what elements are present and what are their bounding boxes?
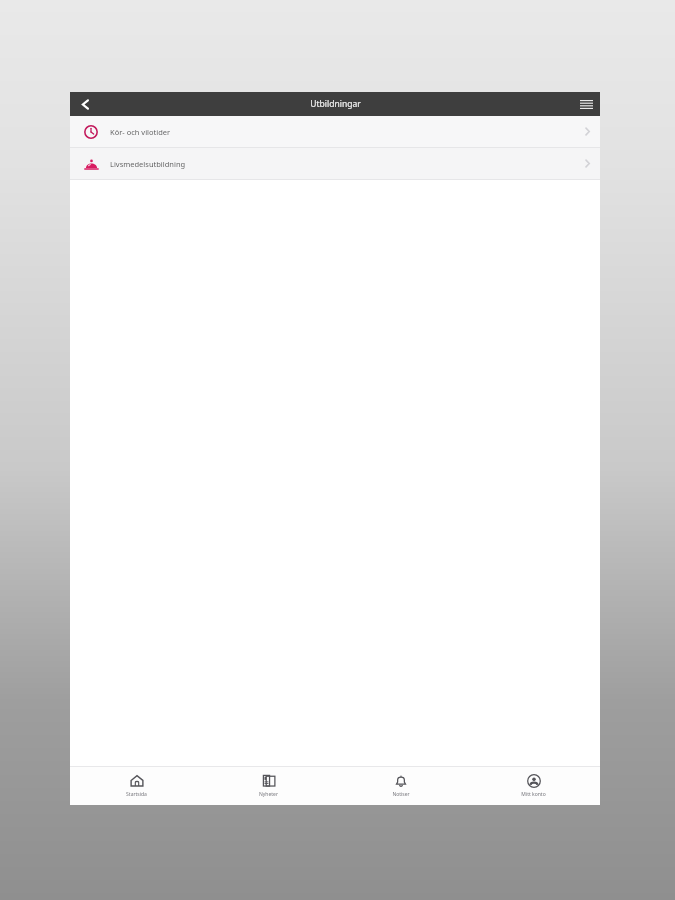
button[interactable]: Mitt konto — [467, 767, 600, 805]
staticText: Mitt konto — [521, 791, 546, 798]
staticText: Startsida — [126, 791, 147, 798]
staticText: Notiser — [392, 791, 410, 798]
button[interactable]: Back — [70, 92, 100, 116]
staticText: Livsmedelsutbildning — [110, 159, 186, 169]
staticText: Nyheter — [259, 791, 278, 798]
button[interactable]: Startsida — [70, 767, 202, 805]
staticText: Utbildningar — [310, 98, 361, 110]
button[interactable]: Menu — [572, 92, 600, 116]
button[interactable]: Kör- och vilotider — [70, 116, 600, 147]
button[interactable]: Livsmedelsutbildning — [70, 148, 600, 179]
button[interactable]: Nyheter — [202, 767, 334, 805]
button[interactable]: Notiser — [334, 767, 467, 805]
staticText: Kör- och vilotider — [110, 127, 171, 137]
